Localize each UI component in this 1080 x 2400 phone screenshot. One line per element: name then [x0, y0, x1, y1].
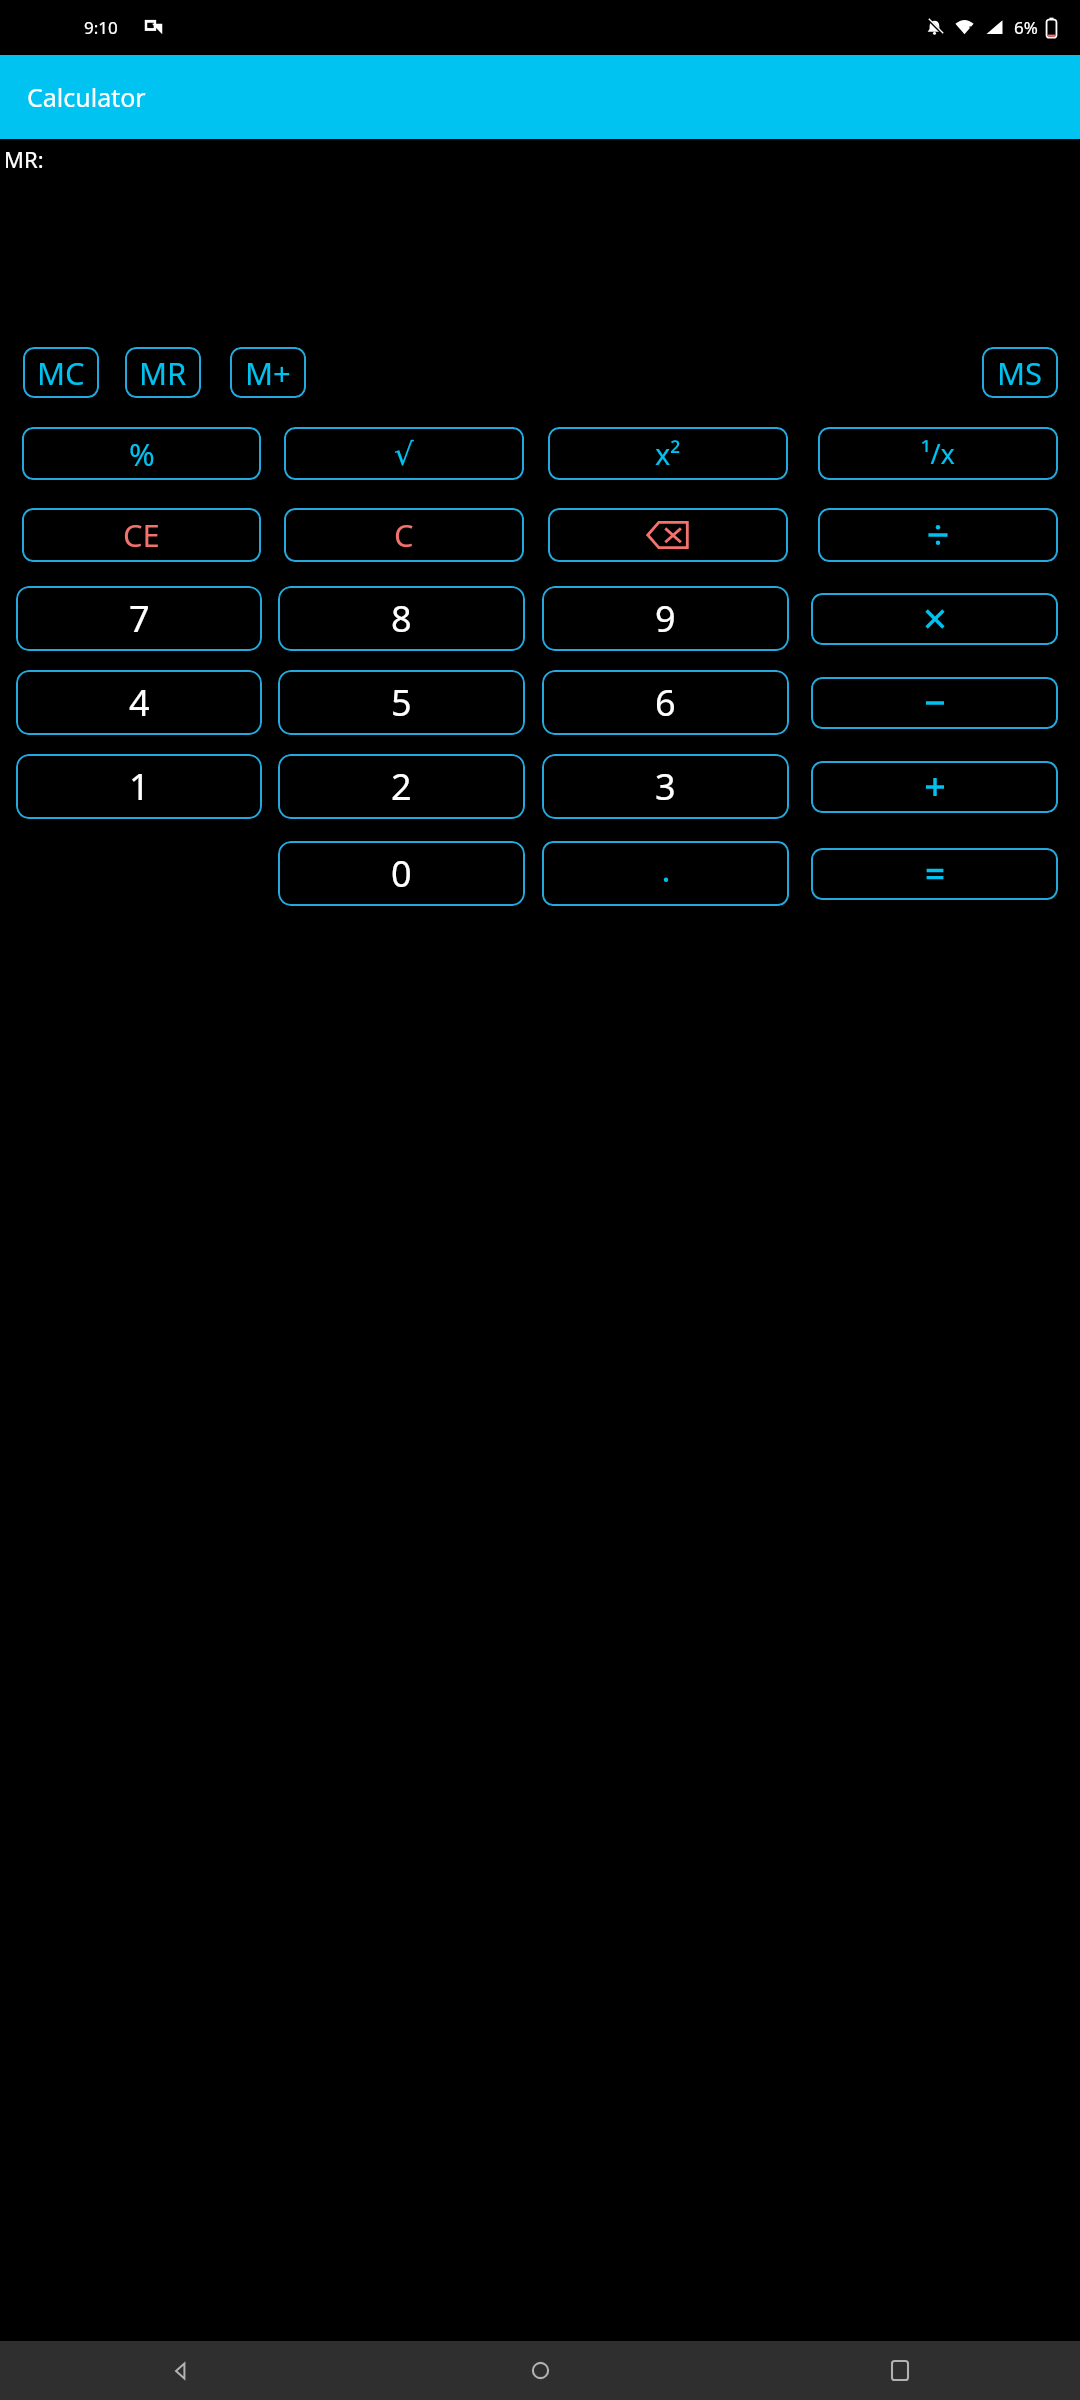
staticText: 6% [1014, 16, 1038, 39]
button[interactable]: Backspace [548, 508, 788, 562]
button[interactable]: 7 [16, 586, 262, 651]
staticText: 2 [391, 762, 412, 811]
button[interactable]: 4 [16, 670, 262, 735]
staticText: MR: [4, 144, 44, 174]
button[interactable]: Subtract [811, 677, 1058, 729]
button[interactable]: 3 [542, 754, 789, 819]
staticText: ¹/x [921, 435, 955, 472]
button[interactable]: CE [22, 508, 261, 562]
staticText: 3 [655, 762, 676, 811]
staticText: 5 [391, 678, 412, 727]
staticText: √ [394, 436, 414, 472]
staticText: 8 [391, 594, 412, 643]
button[interactable]: Equals [811, 848, 1058, 900]
button[interactable]: % [22, 427, 261, 480]
button[interactable]: √ [284, 427, 524, 480]
button[interactable]: MR [125, 347, 201, 398]
button[interactable]: 2 [278, 754, 525, 819]
staticText: MR [139, 352, 187, 394]
button[interactable]: 9 [542, 586, 789, 651]
button[interactable]: ¹/x [818, 427, 1058, 480]
button[interactable]: Decimal point [542, 841, 789, 906]
staticText: Calculator [27, 80, 146, 114]
button[interactable]: Recent apps [720, 2341, 1080, 2400]
button[interactable]: 8 [278, 586, 525, 651]
staticText: M+ [245, 352, 291, 394]
button[interactable]: Multiply [811, 593, 1058, 645]
button[interactable]: Add [811, 761, 1058, 813]
button[interactable]: 5 [278, 670, 525, 735]
button[interactable]: x² [548, 427, 788, 480]
staticText: 4 [129, 678, 150, 727]
staticText: % [129, 433, 155, 475]
button[interactable]: MC [23, 347, 99, 398]
staticText: 9 [655, 594, 676, 643]
button[interactable]: 0 [278, 841, 525, 906]
button[interactable]: MS [982, 347, 1058, 398]
staticText: x² [655, 434, 681, 473]
button[interactable]: Back [0, 2341, 360, 2400]
button[interactable]: 1 [16, 754, 262, 819]
staticText: 7 [129, 594, 150, 643]
staticText: 1 [129, 762, 150, 811]
button[interactable]: Home [360, 2341, 720, 2400]
button[interactable]: C [284, 508, 524, 562]
staticText: MS [997, 352, 1043, 394]
button[interactable]: 6 [542, 670, 789, 735]
staticText: MC [37, 352, 85, 394]
staticText: 0 [391, 849, 412, 898]
staticText: C [394, 514, 414, 556]
staticText: 9:10 [84, 16, 118, 39]
staticText: 6 [655, 678, 676, 727]
button[interactable]: M+ [230, 347, 306, 398]
staticText: CE [123, 514, 160, 556]
button[interactable]: Divide [818, 508, 1058, 562]
